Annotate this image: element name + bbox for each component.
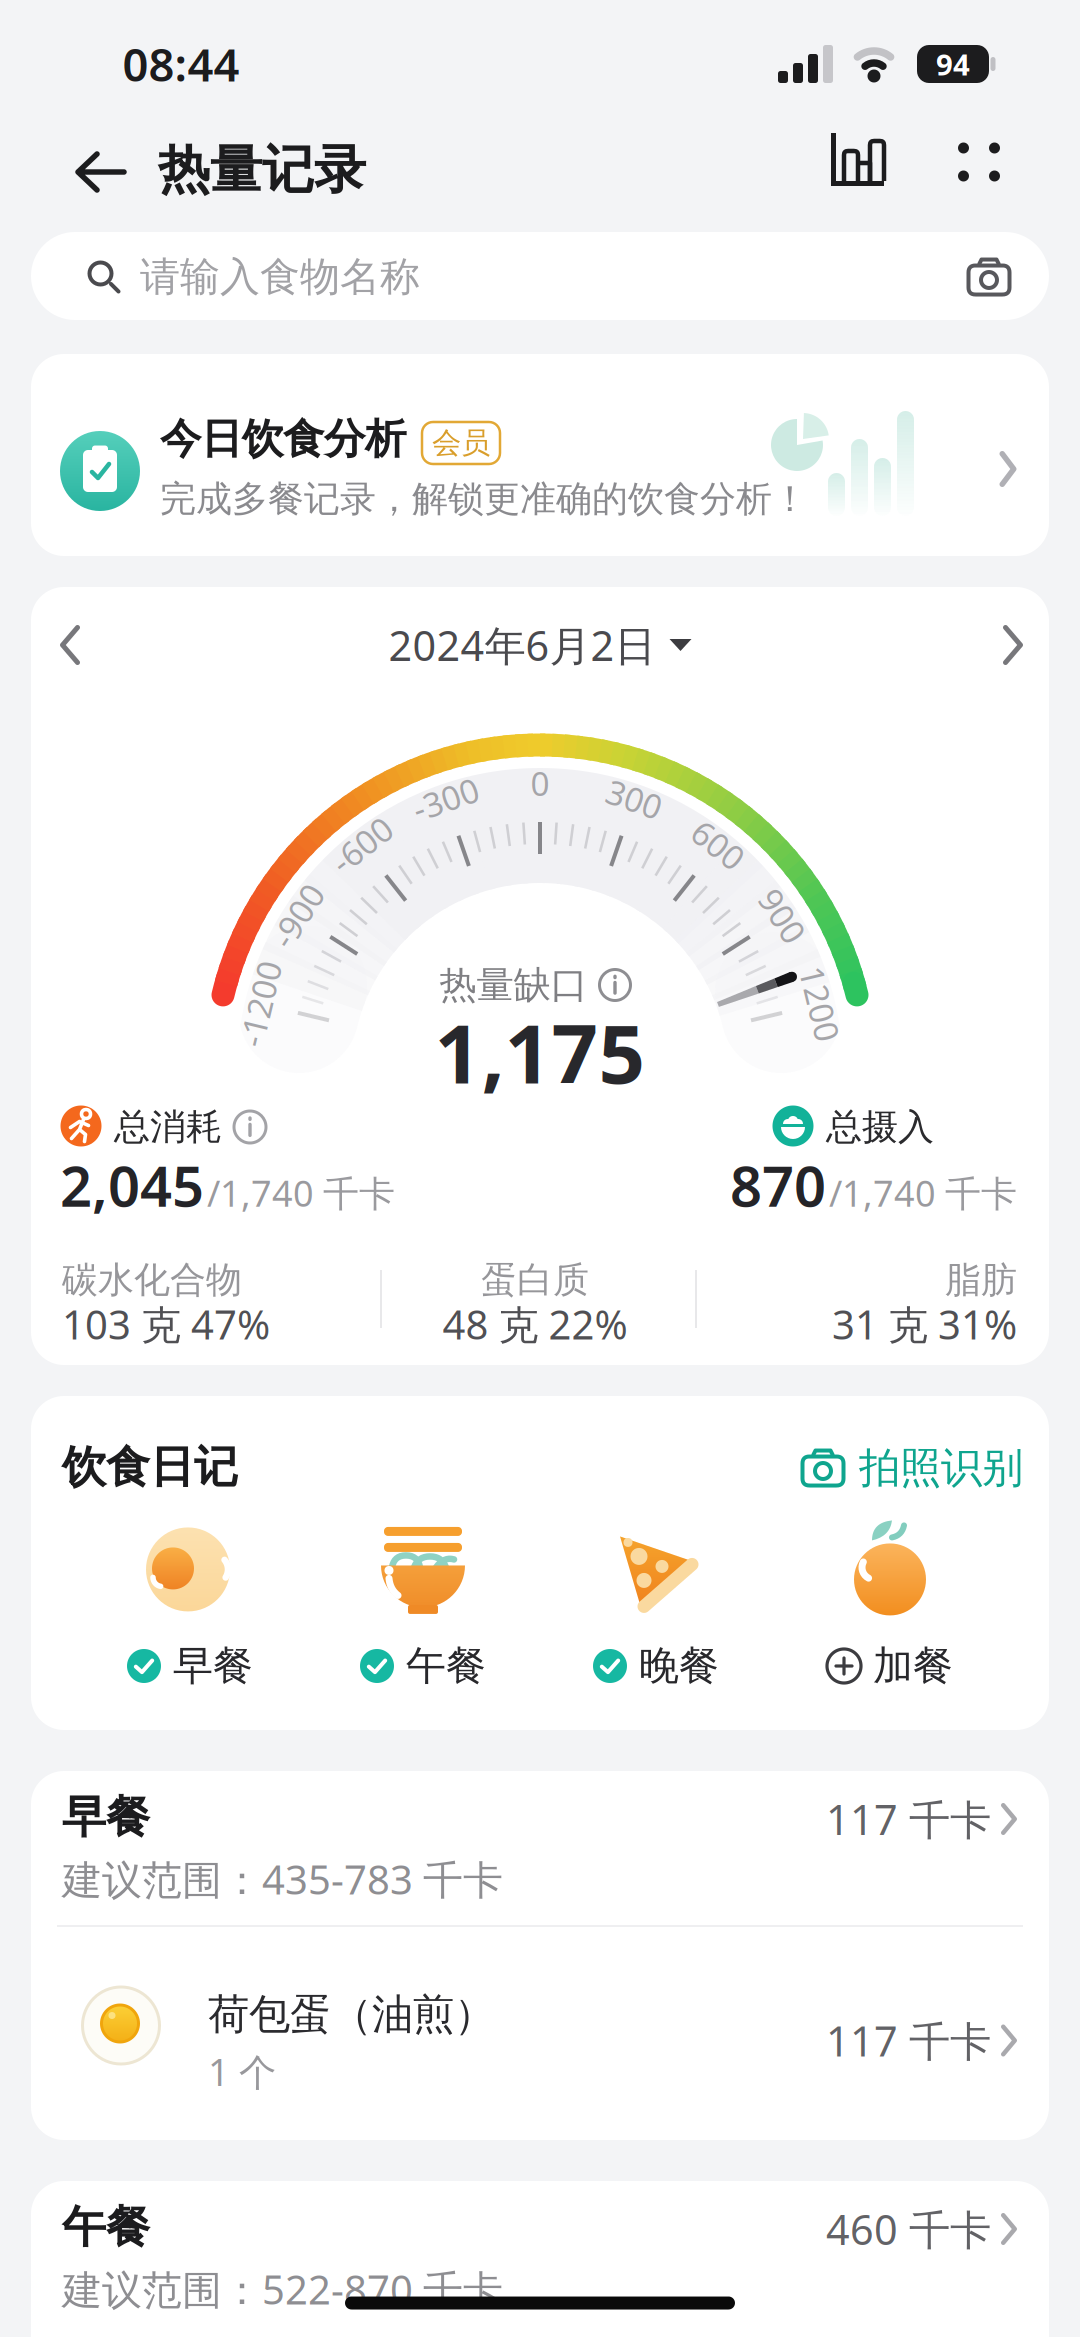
button[interactable]: 午餐: [31, 2181, 1049, 2333]
staticText: 600: [690, 823, 747, 867]
staticText: 300: [606, 777, 663, 821]
staticText: /1,740 千卡: [829, 1169, 1017, 1217]
button[interactable]: 早餐: [127, 1521, 253, 1690]
staticText: 午餐: [62, 2200, 150, 2254]
staticText: 1 个: [208, 2047, 276, 2096]
staticText: 460 千卡: [826, 2202, 991, 2256]
staticText: 饮食日记: [62, 1440, 238, 1494]
staticText: 蛋白质: [481, 1258, 589, 1302]
button[interactable]: 2024年6月2日: [388, 618, 691, 672]
staticText: 0: [530, 761, 549, 805]
staticText: 总摄入: [826, 1105, 934, 1149]
staticText: /1,740 千卡: [207, 1169, 395, 1217]
staticText: 103 克 47%: [62, 1297, 270, 1350]
staticText: 1200: [782, 982, 858, 1026]
button[interactable]: 统计图表: [820, 124, 896, 196]
staticText: 碳水化合物: [62, 1258, 242, 1302]
staticText: 总消耗: [114, 1105, 222, 1149]
button[interactable]: 今日饮食分析: [31, 354, 1049, 556]
staticText: -300: [412, 777, 480, 821]
staticText: 会员: [432, 425, 490, 461]
staticText: 晚餐: [639, 1641, 719, 1690]
button[interactable]: 早餐: [31, 1771, 1049, 1923]
staticText: 48 克 22%: [442, 1297, 627, 1350]
staticText: 加餐: [873, 1641, 953, 1690]
staticText: 2024年6月2日: [388, 618, 655, 672]
staticText: -1200: [216, 982, 303, 1026]
staticText: 早餐: [62, 1790, 150, 1844]
staticText: 117 千卡: [826, 2013, 991, 2068]
staticText: 完成多餐记录，解锁更准确的饮食分析！: [160, 477, 808, 521]
staticText: 117 千卡: [826, 1792, 991, 1846]
staticText: 请输入食物名称: [140, 252, 420, 301]
staticText: 荷包蛋（油煎）: [208, 1989, 495, 2040]
staticText: 今日饮食分析: [160, 414, 406, 464]
staticText: 脂肪: [945, 1258, 1017, 1302]
button[interactable]: 请输入食物名称: [31, 232, 1049, 320]
button[interactable]: 返回: [61, 136, 141, 208]
staticText: -600: [328, 823, 396, 867]
button[interactable]: 更多: [944, 126, 1014, 198]
button[interactable]: 加餐: [827, 1521, 953, 1690]
button[interactable]: 午餐: [360, 1521, 486, 1690]
staticText: 热量缺口: [439, 962, 587, 1008]
staticText: 870: [730, 1148, 826, 1222]
staticText: 2,045: [60, 1148, 204, 1222]
button[interactable]: 拍照识别: [801, 1443, 1023, 1493]
staticText: 建议范围：435-783 千卡: [62, 1852, 503, 1905]
staticText: 94: [936, 44, 970, 83]
staticText: 建议范围：522-870 千卡: [62, 2262, 503, 2315]
staticText: 31 克 31%: [832, 1297, 1017, 1350]
staticText: 午餐: [406, 1641, 486, 1690]
button[interactable]: 晚餐: [593, 1521, 719, 1690]
button[interactable]: 前一天: [35, 610, 105, 680]
staticText: -900: [263, 894, 331, 938]
staticText: 热量记录: [158, 138, 366, 202]
staticText: 1,175: [434, 998, 645, 1106]
button[interactable]: 荷包蛋（油煎）: [31, 1926, 1049, 2139]
staticText: 08:44: [122, 34, 239, 94]
staticText: 900: [754, 894, 811, 938]
button[interactable]: 后一天: [978, 610, 1048, 680]
staticText: 拍照识别: [859, 1443, 1023, 1493]
staticText: 早餐: [173, 1641, 253, 1690]
